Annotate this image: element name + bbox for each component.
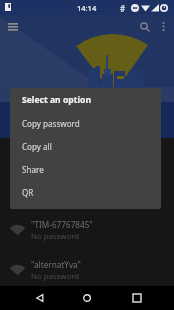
staticText: Share [22,164,44,175]
button[interactable]: Share [10,158,161,181]
button[interactable]: "TIM-67767845" [0,210,174,250]
staticText: Copy all [22,141,52,152]
staticText: "alternatYva" [31,259,81,270]
button[interactable]: More options [153,15,173,38]
staticText: QR [22,187,34,198]
button[interactable]: "alternatYva" [0,250,174,290]
staticText: No password [31,231,80,242]
button[interactable]: Home [77,288,97,308]
staticText: No password [31,271,80,282]
staticText: 14:14 [77,3,97,13]
button[interactable]: Search [134,15,156,38]
button[interactable]: Recents [127,288,147,308]
staticText: Select an option [22,94,91,106]
staticText: # [120,3,126,14]
button[interactable]: Copy all [10,135,161,158]
staticText: "TIM-67767845" [31,219,93,230]
button[interactable]: Copy password [10,112,161,135]
button[interactable]: QR [10,181,161,204]
button[interactable]: Back [30,288,50,308]
button[interactable]: Menu [1,15,24,38]
staticText: Copy password [22,118,80,129]
